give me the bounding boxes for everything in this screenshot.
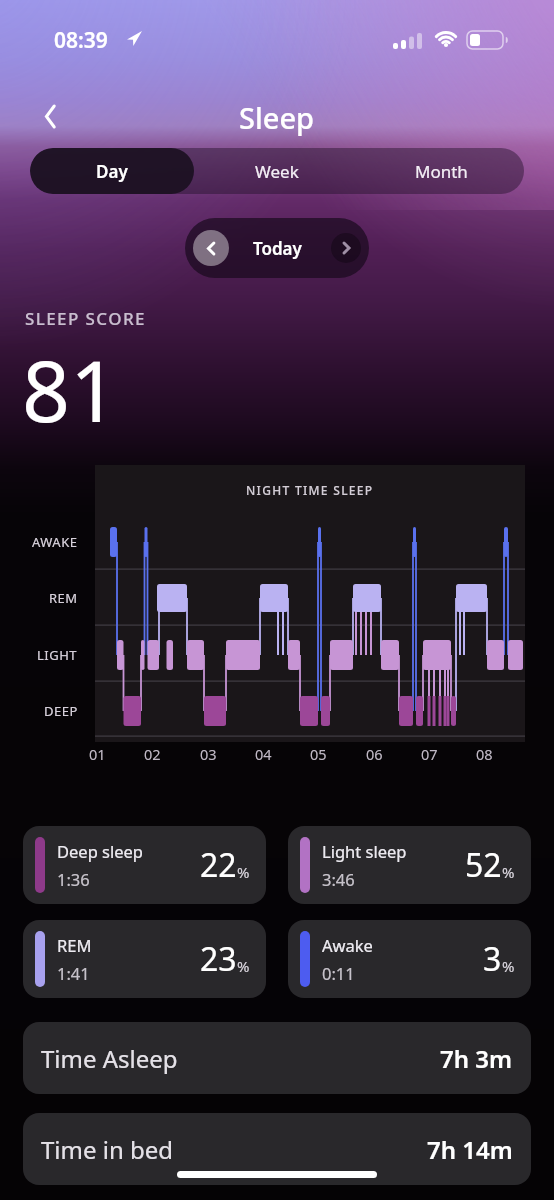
staticText: 52 <box>465 843 502 887</box>
button[interactable]: Week <box>194 148 359 194</box>
button[interactable] <box>30 96 70 136</box>
button[interactable]: Deep sleep <box>23 826 266 904</box>
staticText: 81 <box>22 332 119 446</box>
staticText: SLEEP SCORE <box>25 307 146 330</box>
staticText: 23 <box>200 937 237 981</box>
staticText: 7h 14m <box>427 1133 513 1166</box>
staticText: Today <box>253 237 302 260</box>
staticText: LIGHT <box>37 646 78 664</box>
button[interactable] <box>331 233 361 263</box>
staticText: 7h 3m <box>440 1042 513 1075</box>
staticText: % <box>502 956 515 976</box>
button[interactable]: Awake <box>288 920 531 998</box>
staticText: 03 <box>200 744 217 764</box>
staticText: 02 <box>144 744 161 764</box>
button[interactable]: Time Asleep <box>23 1022 531 1094</box>
staticText: 0:11 <box>322 962 355 984</box>
staticText: % <box>237 956 250 976</box>
staticText: Awake <box>322 934 373 956</box>
staticText: 3 <box>483 937 502 981</box>
staticText: Sleep <box>239 98 315 137</box>
staticText: 1:41 <box>57 962 90 984</box>
staticText: 04 <box>255 744 272 764</box>
button[interactable]: Day <box>30 148 194 194</box>
staticText: Day <box>96 160 128 183</box>
staticText: 1:36 <box>57 868 90 890</box>
staticText: Light sleep <box>322 840 407 862</box>
staticText: REM <box>49 589 78 607</box>
staticText: 01 <box>89 744 106 764</box>
button[interactable]: Month <box>359 148 524 194</box>
staticText: Week <box>255 160 299 183</box>
button[interactable]: Time in bed <box>23 1113 531 1185</box>
staticText: DEEP <box>44 702 78 720</box>
staticText: Deep sleep <box>57 840 144 862</box>
button[interactable] <box>193 230 229 266</box>
staticText: Month <box>415 160 468 183</box>
staticText: % <box>502 862 515 882</box>
staticText: 22 <box>200 843 237 887</box>
button[interactable]: Light sleep <box>288 826 531 904</box>
staticText: REM <box>57 934 92 956</box>
staticText: % <box>237 862 250 882</box>
staticText: 08:39 <box>54 26 108 55</box>
button[interactable]: REM <box>23 920 266 998</box>
staticText: Time in bed <box>41 1133 174 1166</box>
staticText: NIGHT TIME SLEEP <box>246 482 374 498</box>
staticText: 3:46 <box>322 868 355 890</box>
staticText: AWAKE <box>32 533 78 551</box>
staticText: Time Asleep <box>41 1042 178 1075</box>
staticText: 08 <box>476 744 493 764</box>
staticText: 06 <box>366 744 383 764</box>
staticText: 05 <box>310 744 327 764</box>
staticText: 07 <box>421 744 438 764</box>
